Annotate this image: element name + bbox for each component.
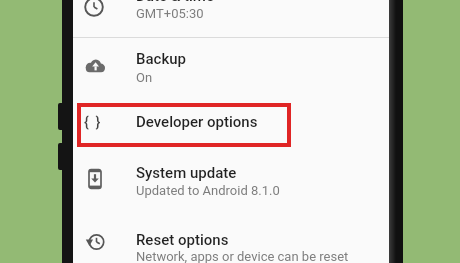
button[interactable]: Date & time bbox=[73, 0, 389, 37]
staticText: Network, apps or device can be reset bbox=[136, 249, 349, 263]
button[interactable]: System update bbox=[73, 147, 389, 207]
staticText: Updated to Android 8.1.0 bbox=[136, 183, 280, 198]
button[interactable]: Reset options bbox=[73, 207, 389, 263]
button[interactable]: Backup bbox=[73, 38, 389, 98]
staticText: On bbox=[136, 70, 153, 85]
staticText: System update bbox=[136, 164, 237, 182]
staticText: { } bbox=[84, 114, 102, 130]
button[interactable]: Developer options bbox=[73, 98, 389, 147]
staticText: Backup bbox=[136, 50, 187, 68]
staticText: Date & time bbox=[136, 0, 214, 5]
staticText: Developer options bbox=[136, 113, 258, 131]
staticText: Reset options bbox=[136, 231, 229, 249]
staticText: GMT+05:30 bbox=[136, 6, 204, 21]
